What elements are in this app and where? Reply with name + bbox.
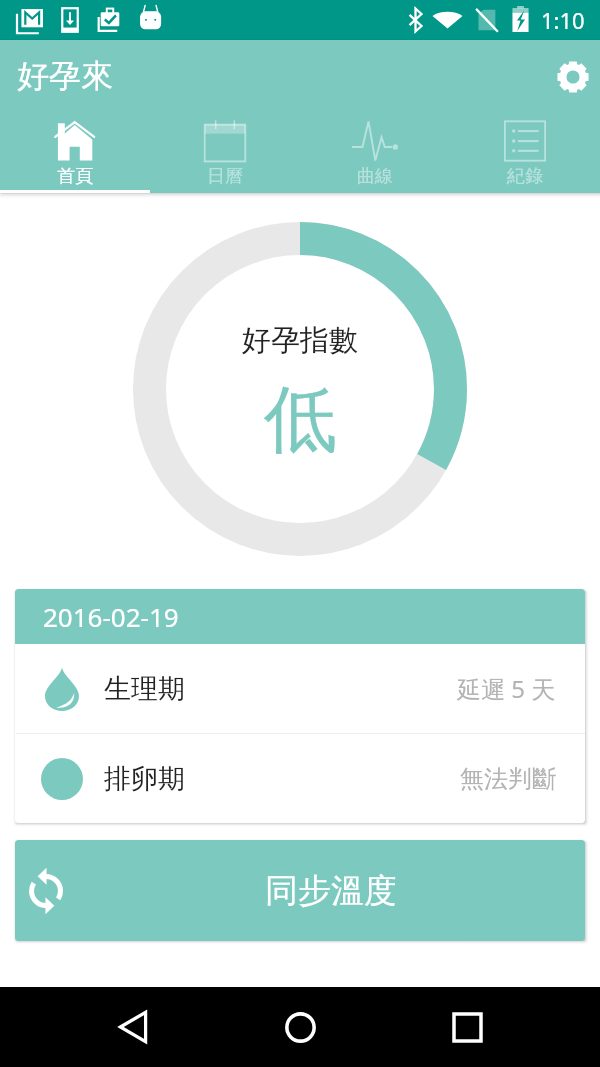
staticText: 1:10 — [541, 5, 585, 35]
button[interactable]: 2016-02-19 — [15, 589, 585, 644]
staticText: 好孕來 — [17, 56, 113, 96]
button[interactable]: 曲線 — [300, 112, 450, 193]
staticText: 紀錄 — [507, 165, 543, 188]
button[interactable]: Recent apps — [437, 997, 497, 1057]
button[interactable]: 排卵期 — [15, 734, 585, 823]
staticText: 日曆 — [207, 165, 243, 188]
staticText: 低 — [264, 374, 337, 466]
staticText: 無法判斷 — [460, 764, 556, 794]
staticText: 同步溫度 — [265, 870, 397, 912]
button[interactable]: Home — [270, 997, 330, 1057]
staticText: 曲線 — [357, 165, 393, 188]
button[interactable]: 日曆 — [150, 112, 300, 193]
button[interactable]: Settings — [550, 54, 595, 99]
staticText: 生理期 — [104, 672, 185, 706]
button[interactable]: 紀錄 — [450, 112, 600, 193]
staticText: 排卵期 — [104, 762, 185, 796]
staticText: 好孕指數 — [242, 322, 358, 359]
staticText: 2016-02-19 — [43, 599, 179, 634]
button[interactable]: 生理期 — [15, 644, 585, 733]
staticText: 延遲 5 天 — [457, 672, 556, 705]
staticText: 首頁 — [57, 165, 93, 188]
button[interactable]: Back — [103, 997, 163, 1057]
button[interactable]: 同步溫度 — [15, 840, 585, 941]
button[interactable]: 首頁 — [0, 112, 150, 193]
